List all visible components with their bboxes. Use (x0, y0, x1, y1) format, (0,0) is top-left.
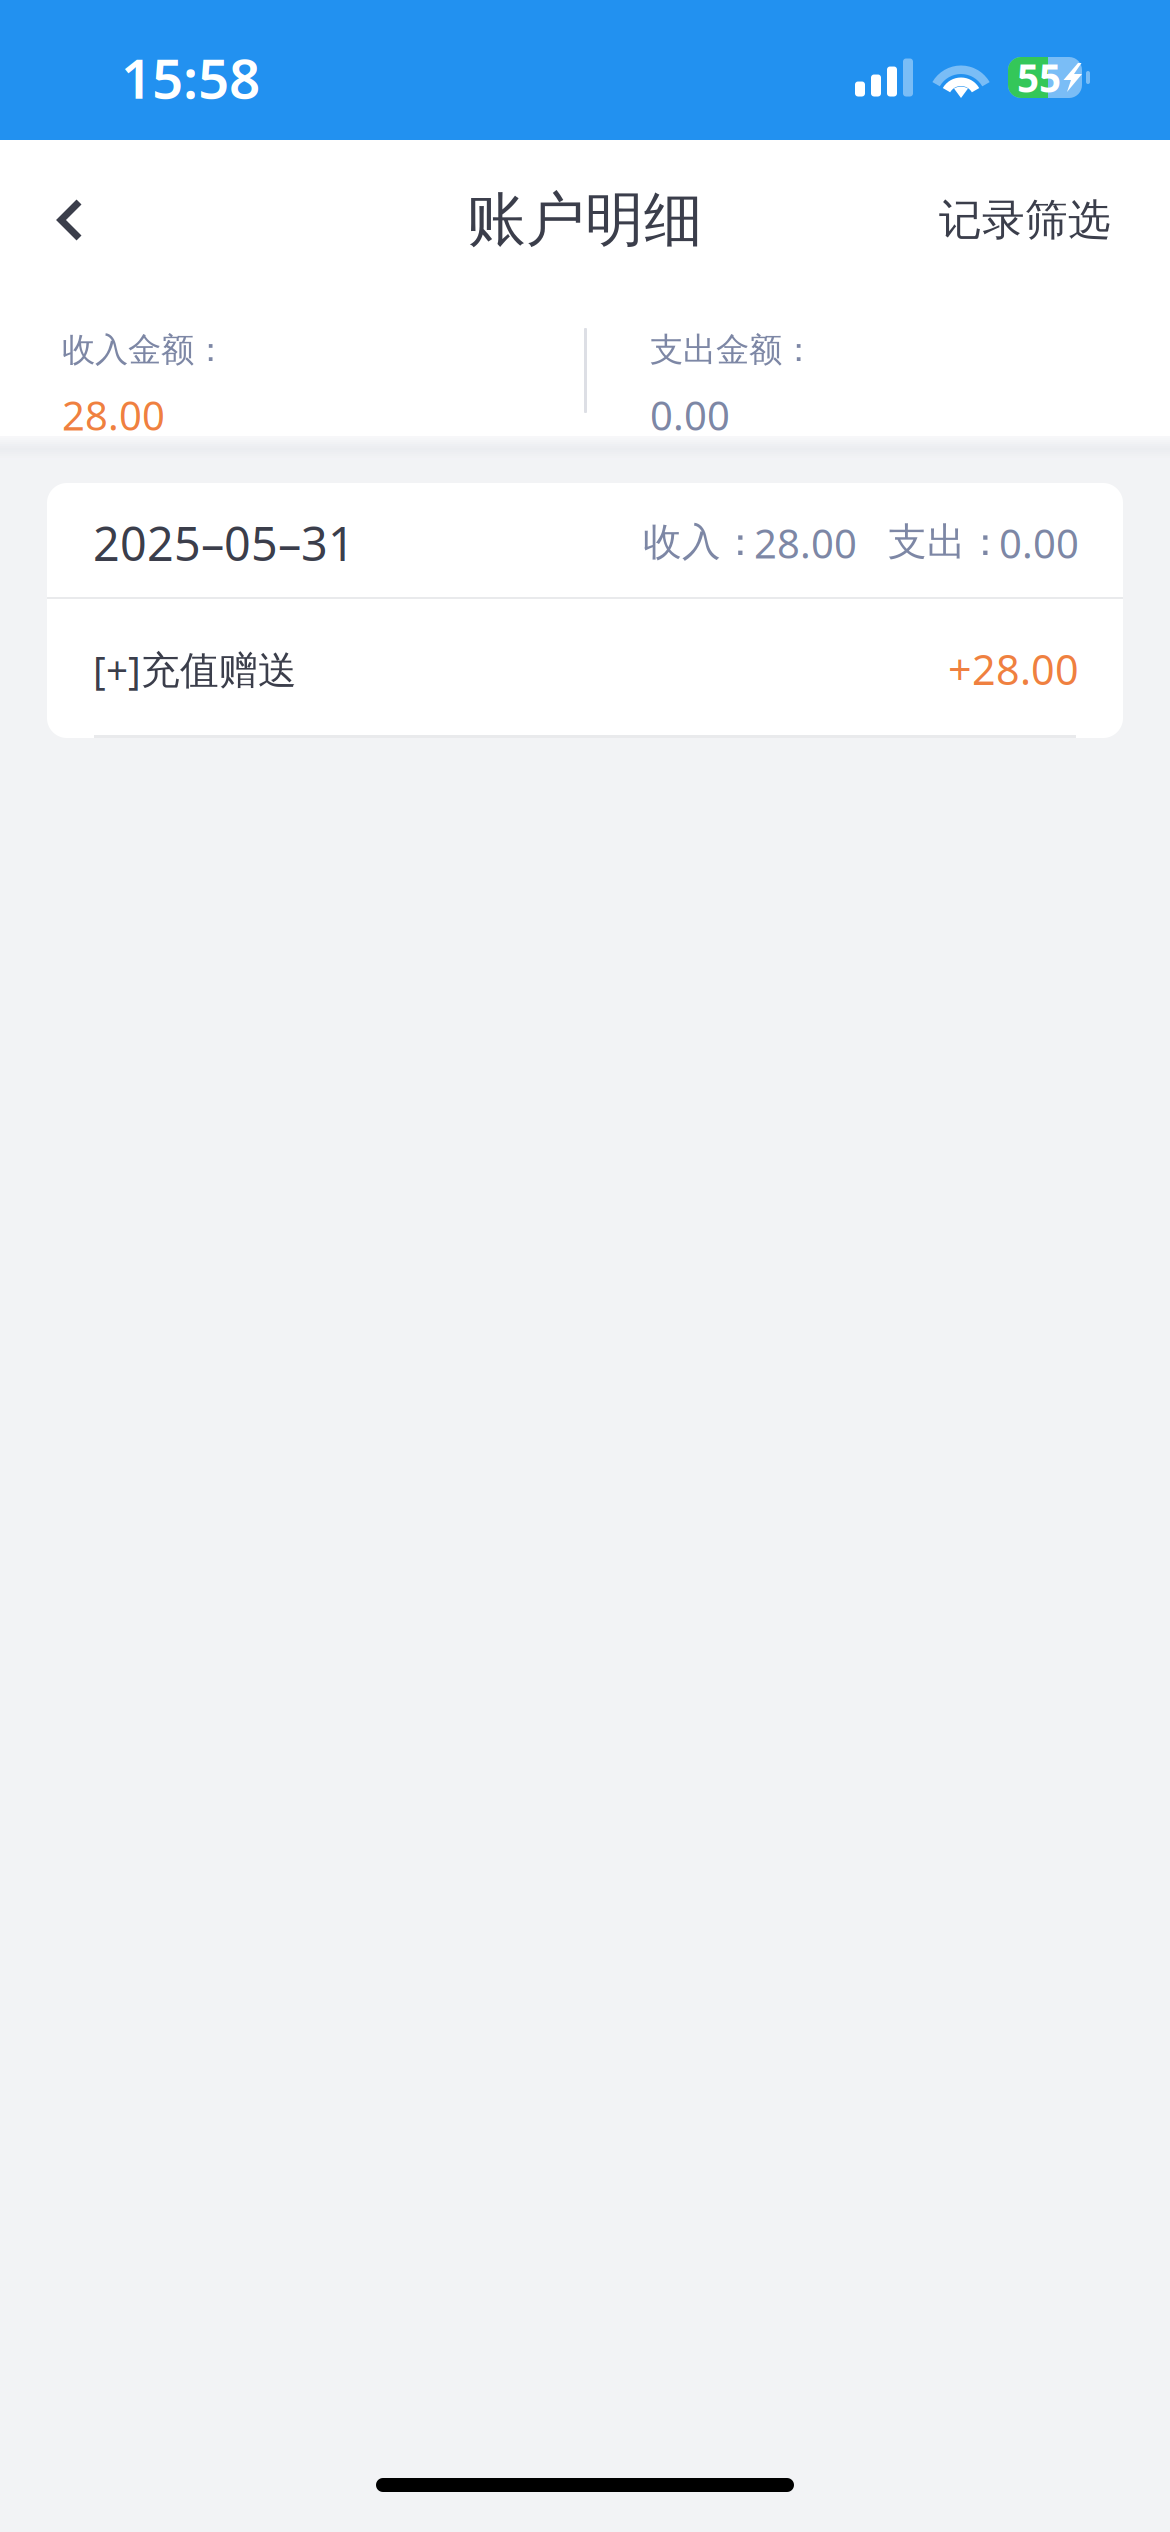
staticText: 28.00 (754, 516, 857, 569)
staticText: 账户明细 (467, 184, 703, 256)
staticText: [+]充值赠送 (93, 643, 297, 695)
staticText: 收入金额： (62, 329, 227, 370)
staticText: 28.00 (62, 388, 165, 441)
staticText: 0.00 (650, 388, 730, 441)
staticText: 支出： (888, 518, 1005, 566)
staticText: 2025–05–31 (93, 512, 355, 574)
staticText: 收入： (643, 518, 760, 566)
staticText: 55 (1017, 52, 1061, 103)
button[interactable]: 返回 (0, 140, 140, 300)
staticText: 记录筛选 (939, 194, 1111, 246)
staticText: 支出金额： (650, 329, 815, 370)
staticText: +28.00 (948, 642, 1079, 696)
button[interactable]: [+]充值赠送 (47, 599, 1123, 735)
button[interactable]: 记录筛选 (939, 140, 1170, 300)
staticText: 0.00 (999, 516, 1079, 569)
staticText: 15:58 (121, 41, 260, 114)
